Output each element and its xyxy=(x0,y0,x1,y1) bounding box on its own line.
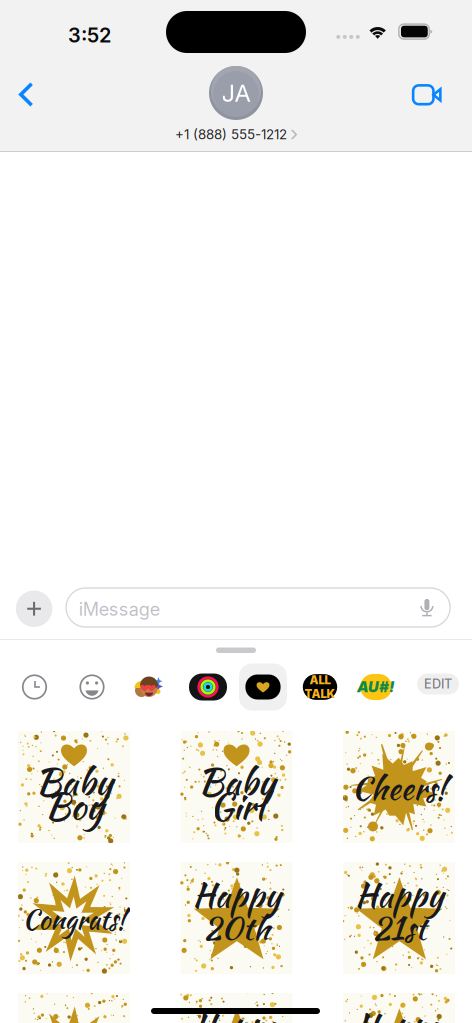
staticText: Happy xyxy=(192,871,280,919)
staticText: Baby xyxy=(197,755,275,808)
button[interactable]: AU xyxy=(352,663,400,710)
button[interactable]: EDIT xyxy=(414,669,462,699)
staticText: JA xyxy=(221,78,250,107)
button[interactable]: Sticker xyxy=(343,862,455,974)
button[interactable]: Sticker xyxy=(343,993,455,1023)
staticText: Happy xyxy=(192,1002,280,1023)
staticText: iMessage xyxy=(79,598,160,620)
staticText: Baby xyxy=(35,755,113,808)
button[interactable]: Sticker xyxy=(180,993,292,1023)
button[interactable]: Back xyxy=(4,72,48,116)
button[interactable]: Memoji xyxy=(125,663,173,710)
button[interactable]: Stickers xyxy=(239,663,287,710)
button[interactable]: Emoji xyxy=(68,663,116,710)
staticText: Boy xyxy=(44,780,104,832)
button[interactable]: Sticker xyxy=(18,862,130,974)
button[interactable]: iMessage xyxy=(66,588,450,627)
button[interactable]: Fitness xyxy=(184,663,232,710)
button[interactable]: Recents xyxy=(10,663,58,710)
staticText: 3:52 xyxy=(68,23,111,47)
staticText: Congrats! xyxy=(22,900,125,939)
staticText: ALL xyxy=(309,673,330,687)
staticText: 21st xyxy=(372,905,426,951)
button[interactable]: Sticker xyxy=(180,862,292,974)
button[interactable]: FaceTime xyxy=(400,73,446,117)
staticText: Happy xyxy=(355,871,443,919)
button[interactable]: Sticker xyxy=(18,993,130,1023)
button[interactable]: Apps xyxy=(16,590,52,627)
button[interactable]: JA xyxy=(146,60,326,144)
staticText: +1 (888) 555-1212 xyxy=(175,126,287,142)
button[interactable]: Sticker xyxy=(18,731,130,843)
staticText: Girl xyxy=(209,780,263,832)
staticText: TALK xyxy=(304,687,335,701)
button[interactable]: Sticker xyxy=(180,731,292,843)
button[interactable]: All Talk xyxy=(296,663,344,710)
staticText: 20th xyxy=(203,905,270,951)
button[interactable]: Sticker xyxy=(343,731,455,843)
staticText: EDIT xyxy=(424,676,452,692)
staticText: Cheers! xyxy=(351,765,446,811)
staticText: Happy xyxy=(355,1002,443,1023)
staticText: AU#! xyxy=(357,678,395,696)
